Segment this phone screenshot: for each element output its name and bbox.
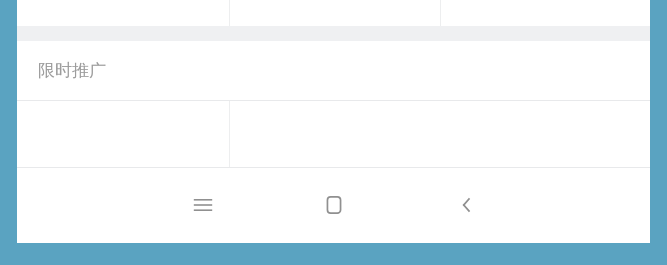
- button[interactable]: 限时推广: [17, 41, 650, 100]
- staticText: 限时推广: [38, 60, 106, 81]
- button[interactable]: Recent apps: [183, 185, 223, 225]
- button[interactable]: Home: [314, 185, 354, 225]
- button[interactable]: Back: [447, 185, 487, 225]
